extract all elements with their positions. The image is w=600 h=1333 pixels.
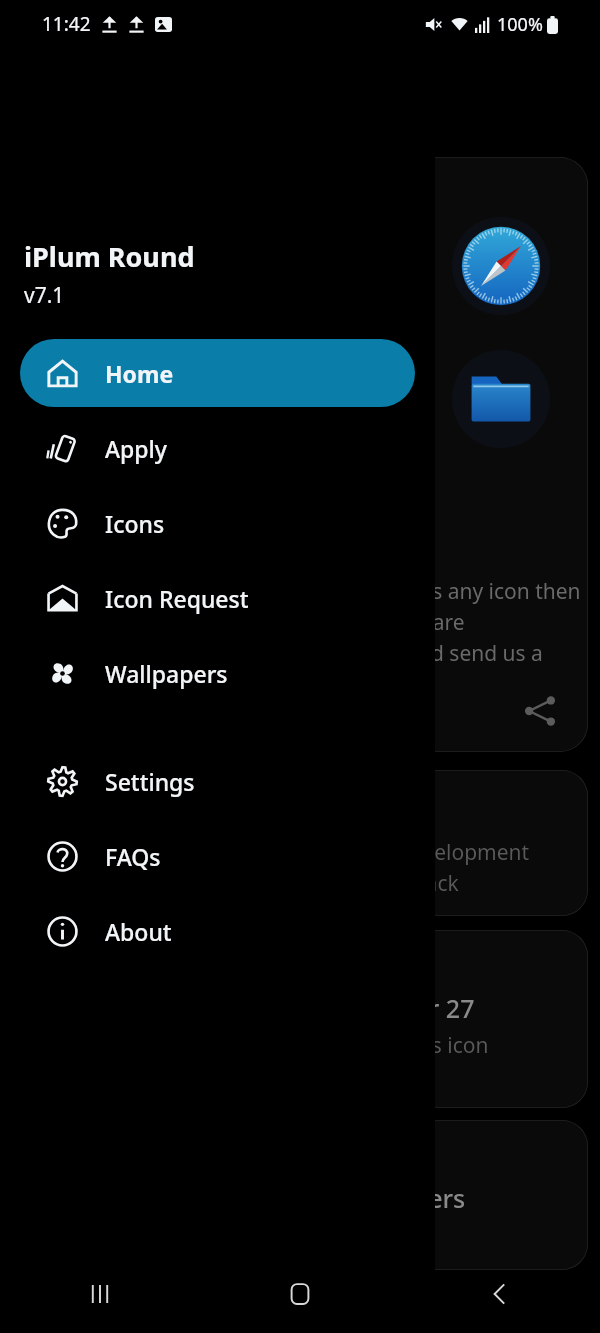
button[interactable]: Long press any icon then tap the share b… <box>310 157 588 752</box>
staticText: Home <box>105 358 174 389</box>
staticText: Long press any icon then tap the share b… <box>334 577 588 667</box>
button[interactable]: Settings <box>20 747 415 815</box>
button[interactable]: Back <box>400 1255 600 1333</box>
button[interactable]: Today Calendar 27 <box>310 930 588 1108</box>
staticText: Icons <box>105 508 165 539</box>
staticText: Settings <box>105 766 195 797</box>
staticText: iPlum Round <box>24 238 195 275</box>
staticText: FAQs <box>105 841 161 872</box>
staticText: 11:42 <box>42 11 91 37</box>
staticText: Icon Request <box>105 583 249 614</box>
staticText: 100% <box>497 12 543 37</box>
button[interactable]: Wallpapers <box>20 639 415 707</box>
staticText: v7.1 <box>24 281 65 310</box>
staticText: 3700 pixels icon <box>332 1031 489 1060</box>
button[interactable]: Recents <box>0 1255 200 1333</box>
staticText: Wallpapers <box>105 658 228 689</box>
staticText: About <box>105 916 172 947</box>
staticText: Under development for icon pack <box>332 838 530 897</box>
button[interactable]: Update <box>310 770 588 916</box>
button[interactable]: Home <box>20 339 415 407</box>
button[interactable]: Icons <box>20 489 415 557</box>
staticText: Today Calendar 27 <box>332 958 475 1025</box>
button[interactable]: About <box>20 897 415 965</box>
staticText: Apply <box>105 433 167 464</box>
button[interactable]: Cloud Wallpapers <box>310 1120 588 1270</box>
button[interactable]: Share <box>516 687 564 735</box>
button[interactable]: FAQs <box>20 822 415 890</box>
staticText: Cloud Wallpapers <box>332 1148 466 1215</box>
button[interactable]: Icon Request <box>20 564 415 632</box>
button[interactable]: Apply <box>20 414 415 482</box>
button[interactable]: Home <box>200 1255 400 1333</box>
